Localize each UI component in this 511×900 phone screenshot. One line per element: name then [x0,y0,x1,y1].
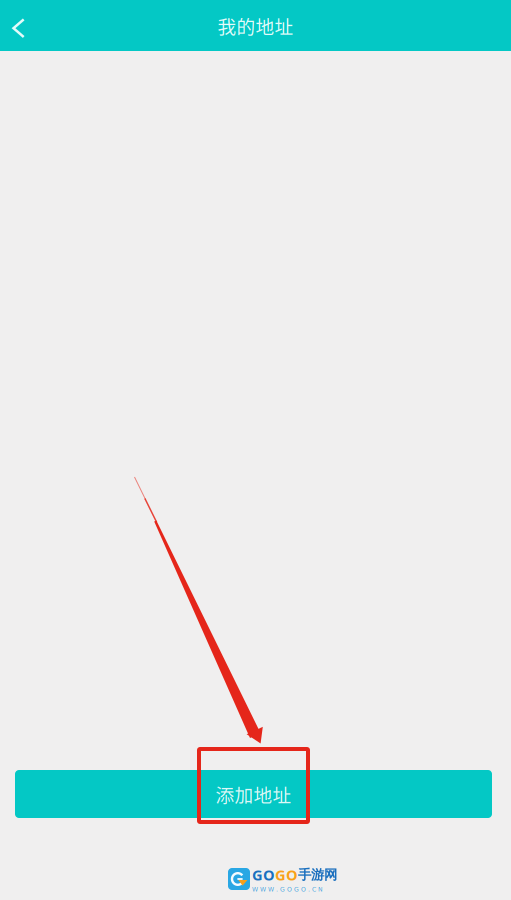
staticText: 添加地址 [215,780,291,807]
staticText: GO [252,865,275,885]
staticText: GO [275,865,298,885]
button[interactable]: 添加地址 [15,770,492,818]
button[interactable]: Back [0,0,39,51]
staticText: 手游网 [298,866,337,883]
staticText: W W W . G O G O . C N [252,886,323,893]
staticText: 我的地址 [217,12,293,39]
